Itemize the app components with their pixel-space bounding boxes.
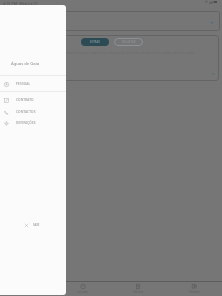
staticText: 4:15 PM Wed Jul 21 xyxy=(3,1,38,6)
button[interactable]: Selecionar local de consumo xyxy=(5,11,220,31)
staticText: Águas de Gaia xyxy=(11,61,40,67)
staticText: CONTACTOS xyxy=(16,110,36,114)
button[interactable]: Leituras xyxy=(55,282,110,296)
staticText: Faturas xyxy=(133,290,144,294)
staticText: REGISTAR xyxy=(122,40,136,44)
staticText: CONTRATO xyxy=(16,98,34,102)
button[interactable]: Consumos xyxy=(0,282,55,296)
button[interactable]: ENTRAR xyxy=(81,38,109,46)
staticText: DEFINIÇÕES xyxy=(16,121,36,125)
button[interactable]: CONTRATO xyxy=(0,94,66,106)
button[interactable]: REGISTAR xyxy=(114,38,143,46)
staticText: ENTRAR xyxy=(90,40,100,44)
staticText: PESSOAL xyxy=(16,82,31,86)
button[interactable]: SAIR xyxy=(25,223,40,227)
staticText: SAIR xyxy=(33,223,40,227)
staticText: Ao efetuar o registo na área reservada p… xyxy=(7,51,217,55)
staticText: Pedidos xyxy=(189,290,200,294)
button[interactable]: DEFINIÇÕES xyxy=(0,117,66,129)
button[interactable]: CONTACTOS xyxy=(0,106,66,118)
staticText: Leituras xyxy=(77,290,88,294)
button[interactable]: PESSOAL xyxy=(0,78,66,90)
